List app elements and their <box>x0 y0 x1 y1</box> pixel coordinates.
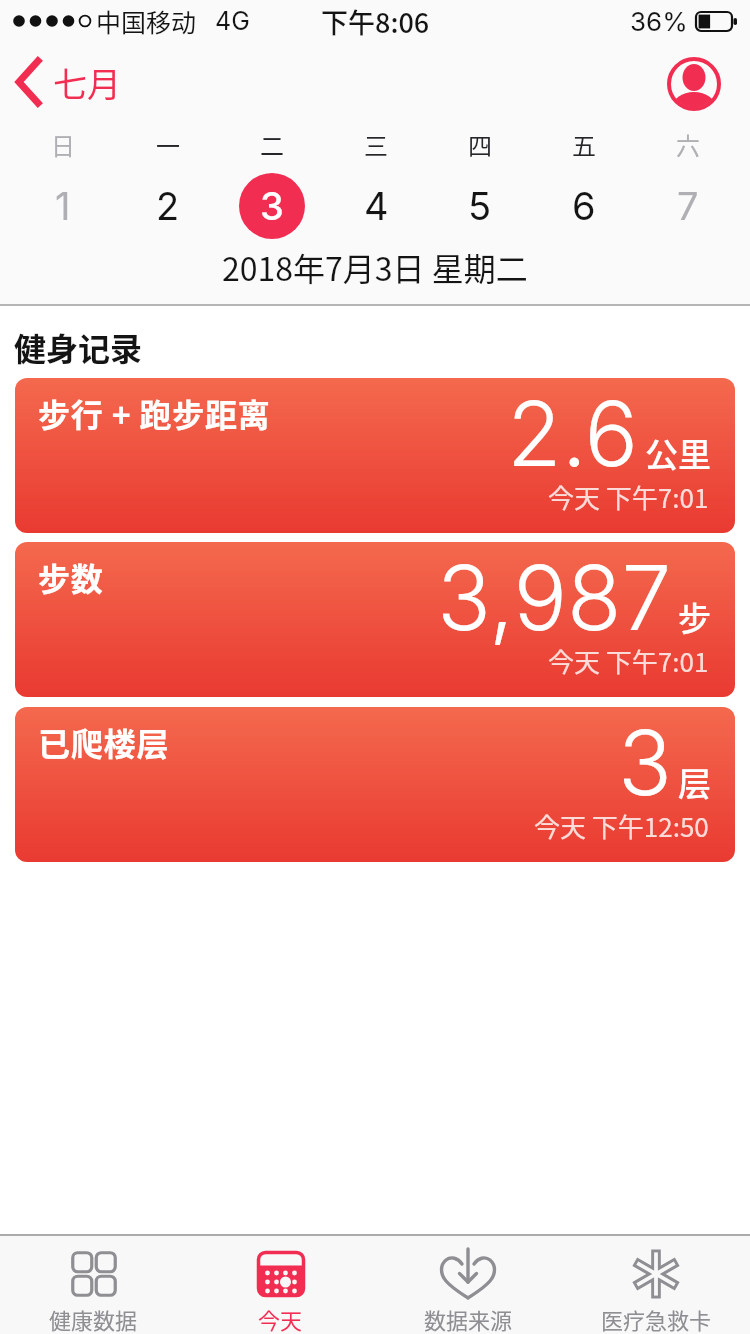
staticText: 2.6 <box>507 380 639 488</box>
staticText: 日 <box>51 127 75 162</box>
button[interactable]: 5 <box>428 170 532 242</box>
staticText: 健身记录 <box>14 324 143 370</box>
staticText: 三 <box>364 127 388 162</box>
staticText: 中国移动 <box>96 3 197 39</box>
staticText: 医疗急救卡 <box>601 1303 712 1334</box>
staticText: 健康数据 <box>49 1303 138 1334</box>
staticText: 下午8:06 <box>321 2 430 41</box>
staticText: 4 <box>364 183 389 229</box>
staticText: 2018年7月3日 星期二 <box>222 244 528 290</box>
staticText: 今天 下午12:50 <box>534 807 709 845</box>
staticText: 7 <box>677 183 699 229</box>
staticText: 二 <box>260 127 284 162</box>
staticText: 数据来源 <box>424 1303 513 1334</box>
staticText: 五 <box>572 127 596 162</box>
staticText: 2 <box>156 183 180 229</box>
button[interactable] <box>664 54 724 114</box>
staticText: 公里 <box>645 429 711 477</box>
staticText: 一 <box>156 127 180 162</box>
button[interactable]: 健康数据 <box>0 1234 187 1334</box>
button[interactable]: 七月 <box>14 56 121 108</box>
staticText: 层 <box>678 758 711 806</box>
button[interactable]: 步数 <box>15 542 735 697</box>
staticText: 5 <box>468 183 492 229</box>
button[interactable]: 7 <box>636 170 740 242</box>
staticText: 步行 + 跑步距离 <box>38 390 271 436</box>
button[interactable]: 医疗急救卡 <box>562 1234 750 1334</box>
staticText: 七月 <box>53 58 121 107</box>
staticText: 六 <box>676 127 700 162</box>
button[interactable]: 2 <box>115 170 220 242</box>
button[interactable]: 已爬楼层 <box>15 707 735 862</box>
staticText: 步 <box>678 593 711 641</box>
staticText: 四 <box>468 127 492 162</box>
button[interactable]: 步行 + 跑步距离 <box>15 378 735 533</box>
staticText: 3 <box>618 709 672 817</box>
button[interactable]: 4 <box>324 170 428 242</box>
button[interactable]: 今天 <box>187 1234 374 1334</box>
staticText: 4G <box>215 6 250 36</box>
staticText: 今天 下午7:01 <box>548 642 709 680</box>
staticText: 1 <box>55 183 71 229</box>
button[interactable]: 6 <box>532 170 636 242</box>
staticText: 36% <box>630 6 688 37</box>
staticText: 6 <box>572 183 596 229</box>
staticText: 步数 <box>38 554 104 600</box>
staticText: 今天 下午7:01 <box>548 478 709 516</box>
button[interactable]: 数据来源 <box>374 1234 562 1334</box>
button[interactable]: 3 <box>220 170 324 242</box>
staticText: 今天 <box>258 1303 303 1334</box>
staticText: 已爬楼层 <box>38 719 170 765</box>
staticText: 3,987 <box>437 544 672 652</box>
button[interactable]: 1 <box>10 170 115 242</box>
staticText: 3 <box>260 183 284 229</box>
